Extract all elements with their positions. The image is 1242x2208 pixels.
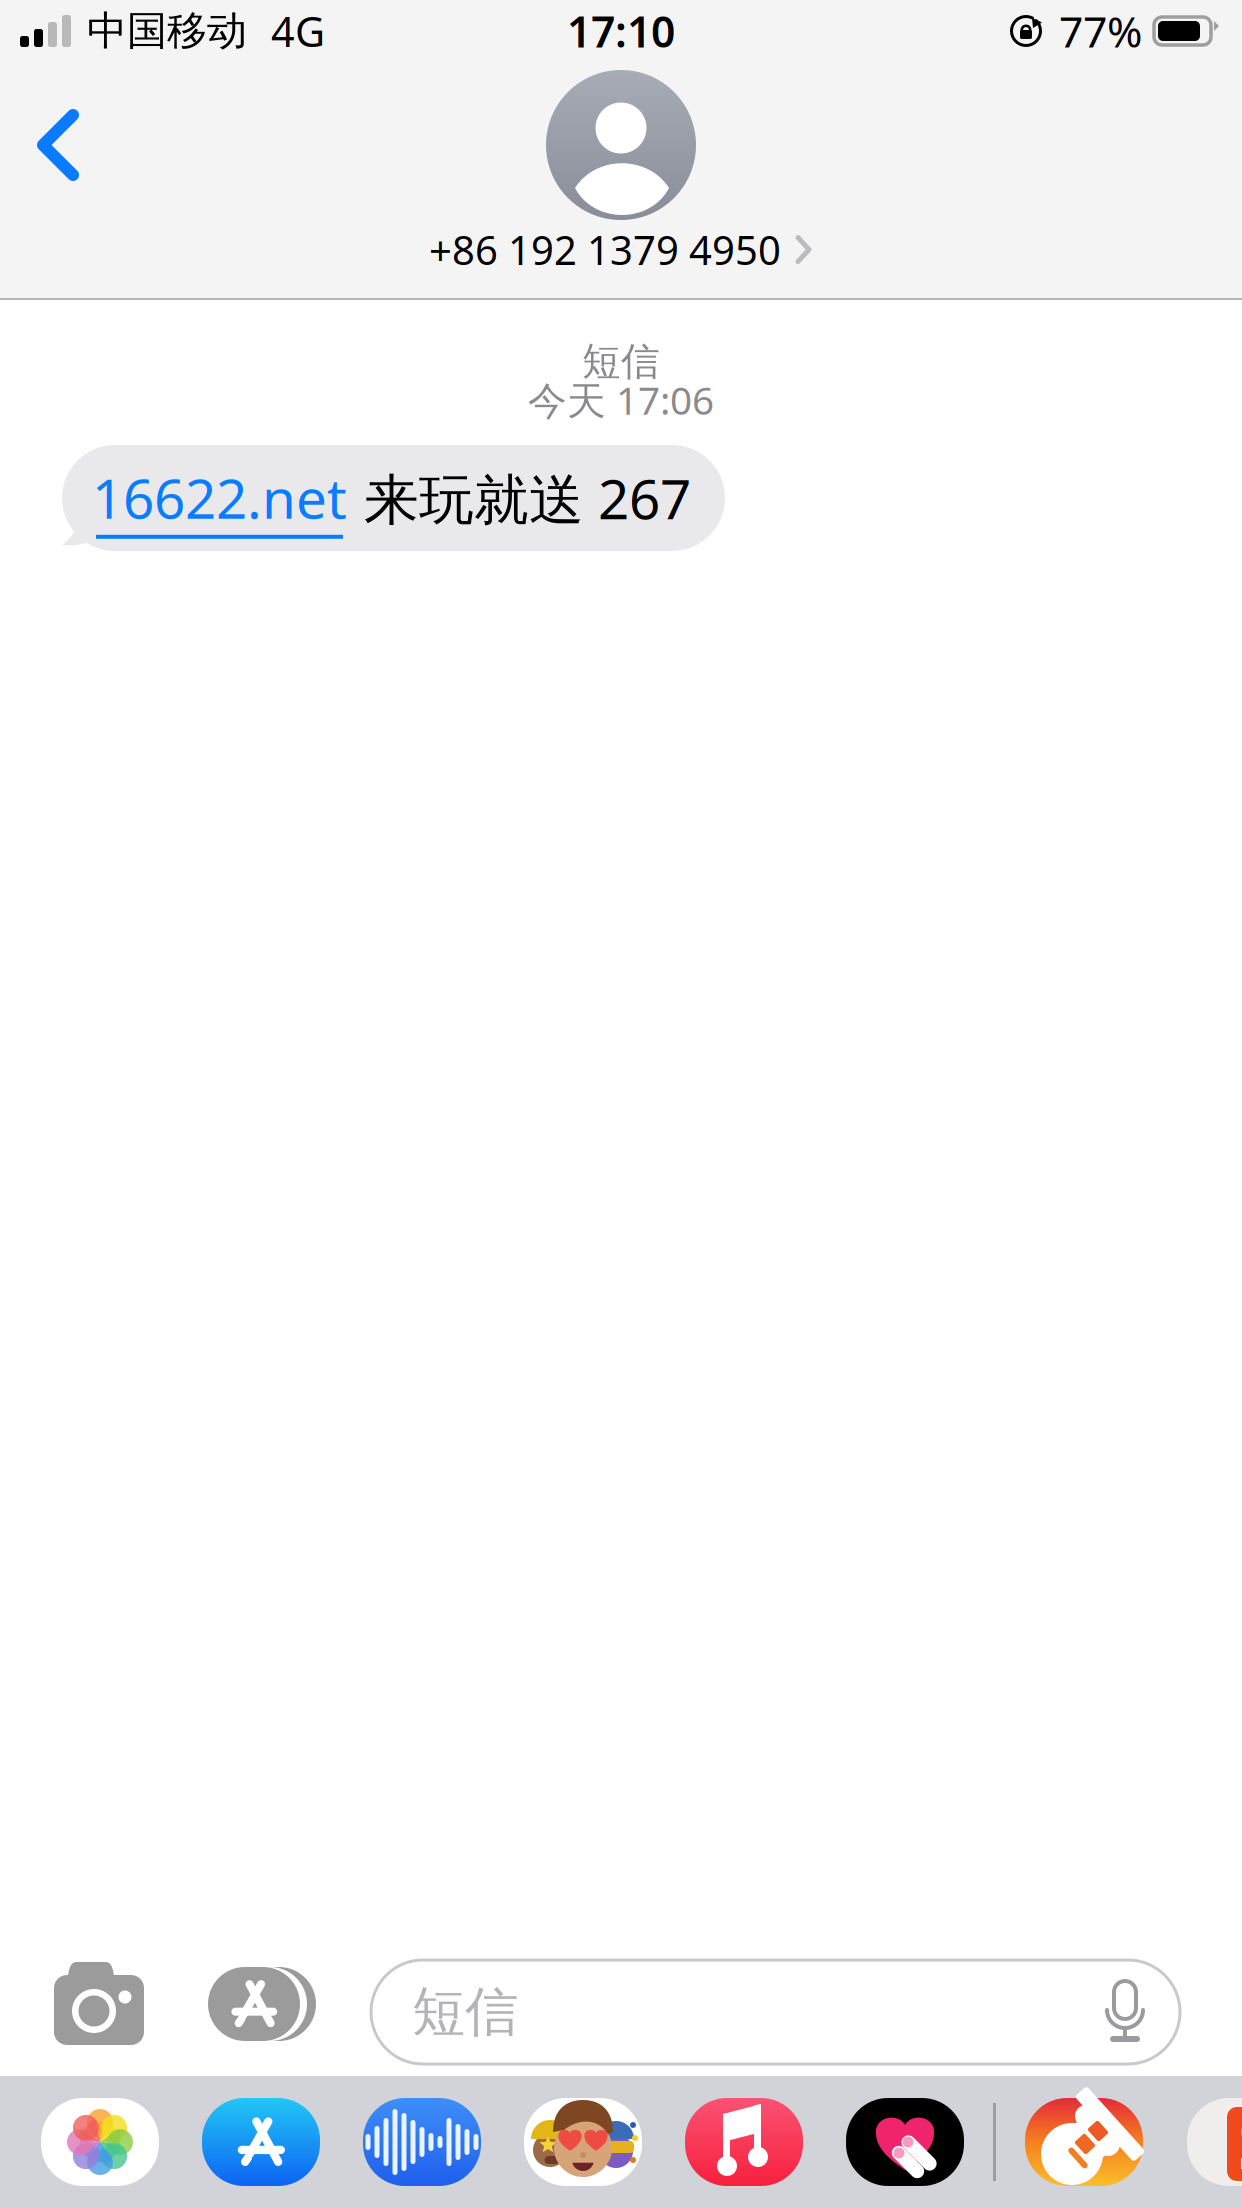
staticText: 77% bbox=[1059, 3, 1142, 59]
button[interactable]: 短信 bbox=[371, 1960, 1180, 2064]
staticText: 来玩就送 267 bbox=[364, 462, 691, 534]
button[interactable]: Memoji bbox=[524, 2098, 642, 2186]
button[interactable]: App Store bbox=[202, 2098, 320, 2186]
button[interactable]: Digital Touch bbox=[846, 2098, 964, 2186]
button[interactable]: Music bbox=[685, 2098, 803, 2186]
staticText: 中国移动 bbox=[87, 6, 247, 55]
button[interactable]: Back bbox=[6, 80, 136, 210]
staticText: 短信 bbox=[582, 338, 660, 385]
staticText: 17:10 bbox=[567, 3, 675, 59]
staticText: +86 192 1379 4950 bbox=[429, 223, 781, 276]
button[interactable]: Camera bbox=[54, 1964, 144, 2046]
button[interactable]: GarageBand bbox=[1025, 2098, 1143, 2186]
staticText: S bbox=[1237, 2092, 1242, 2192]
staticText: 16622.net bbox=[92, 461, 347, 534]
staticText: 4G bbox=[271, 4, 325, 58]
staticText: 今天 17:06 bbox=[528, 374, 714, 425]
button[interactable]: +86 192 1379 4950 bbox=[251, 70, 991, 300]
button[interactable]: Apps bbox=[208, 1964, 316, 2044]
button[interactable]: Photos bbox=[41, 2098, 159, 2186]
button[interactable]: Audio Messages bbox=[363, 2098, 481, 2186]
staticText: 短信 bbox=[412, 1979, 518, 2045]
button[interactable]: Stickers bbox=[1187, 2098, 1242, 2186]
